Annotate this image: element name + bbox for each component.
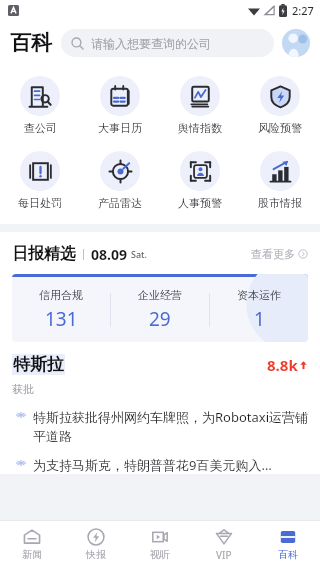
staticText: 08.09 (91, 245, 127, 264)
staticText: 视听 (150, 548, 170, 561)
staticText: 获批 (12, 382, 34, 396)
button[interactable]: 信用合规 (12, 274, 308, 342)
staticText: 舆情指数 (178, 121, 222, 135)
button[interactable]: 大事日历 (80, 72, 160, 139)
staticText: 请输入想要查询的公司 (91, 36, 211, 51)
button[interactable]: 股市情报 (240, 147, 320, 214)
button[interactable]: 特斯拉 (12, 354, 308, 408)
button[interactable]: 风险预警 (240, 72, 320, 139)
staticText: 快报 (86, 548, 106, 561)
button[interactable]: 产品雷达 (80, 147, 160, 214)
staticText: 8.8k (267, 355, 298, 375)
staticText: 查公司 (24, 121, 57, 135)
button[interactable]: Profile (282, 29, 310, 57)
staticText: 资本运作 (237, 288, 281, 302)
staticText: 风险预警 (258, 121, 302, 135)
staticText: 1 (254, 306, 265, 332)
button[interactable]: VIP (192, 521, 256, 568)
staticText: 人事预警 (178, 196, 222, 210)
staticText: 股市情报 (258, 196, 302, 210)
staticText: Sat. (131, 248, 147, 260)
button[interactable]: 请输入想要查询的公司 (61, 29, 274, 57)
button[interactable]: 人事预警 (160, 147, 240, 214)
staticText: 产品雷达 (98, 196, 142, 210)
button[interactable]: 新闻 (0, 521, 64, 568)
staticText: 新闻 (22, 548, 42, 561)
staticText: 百科 (278, 548, 298, 561)
button[interactable]: 舆情指数 (160, 72, 240, 139)
staticText: 131 (45, 306, 78, 332)
button[interactable]: 快报 (64, 521, 128, 568)
button[interactable]: 每日处罚 (0, 147, 80, 214)
staticText: 为支持马斯克，特朗普普花9百美元购入… (33, 456, 312, 474)
staticText: 特斯拉获批得州网约车牌照，为Robotaxi运营铺平道路 (33, 408, 312, 445)
staticText: 企业经营 (138, 288, 182, 302)
staticText: 特斯拉 (13, 354, 64, 375)
staticText: 每日处罚 (18, 196, 62, 210)
staticText: VIP (216, 548, 232, 562)
staticText: 29 (149, 306, 171, 332)
staticText: 百科 (10, 30, 52, 56)
button[interactable]: 视听 (128, 521, 192, 568)
staticText: 日报精选 (12, 244, 76, 264)
button[interactable]: 查公司 (0, 72, 80, 139)
staticText: 信用合规 (39, 288, 83, 302)
staticText: 2:27 (292, 3, 314, 18)
button[interactable]: 查看更多 (251, 247, 308, 261)
staticText: 大事日历 (98, 121, 142, 135)
button[interactable]: 百科 (256, 521, 320, 568)
staticText: 查看更多 (251, 247, 295, 261)
